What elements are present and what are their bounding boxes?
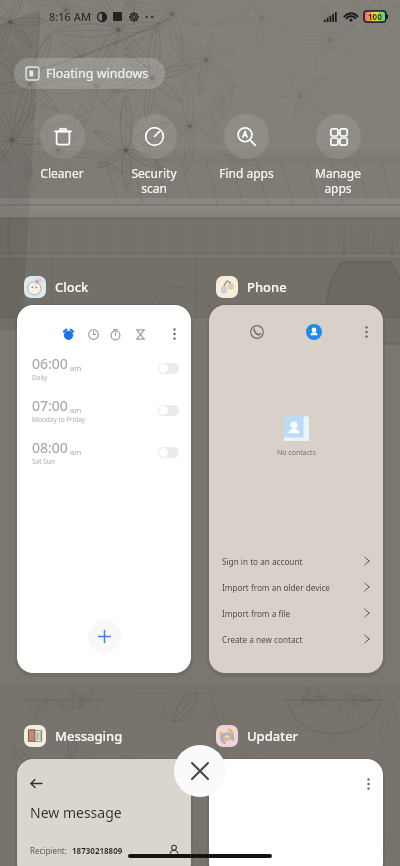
button[interactable]: More options bbox=[209, 759, 383, 866]
button[interactable]: Clock bbox=[24, 272, 89, 302]
staticText: Import from a file bbox=[222, 608, 291, 619]
button[interactable]: World clock bbox=[88, 329, 99, 340]
button[interactable]: Stopwatch bbox=[110, 329, 121, 340]
button[interactable]: Sign in to an account bbox=[222, 548, 370, 574]
staticText: 06:00 bbox=[32, 354, 68, 373]
button[interactable]: Add alarm bbox=[88, 620, 121, 653]
staticText: Sign in to an account bbox=[222, 556, 303, 567]
staticText: Cleaner bbox=[40, 165, 84, 181]
button[interactable]: Messaging bbox=[24, 721, 123, 751]
staticText: Clock bbox=[55, 278, 89, 296]
button[interactable]: Back bbox=[17, 759, 191, 866]
staticText: Daily bbox=[32, 373, 48, 382]
staticText: Messaging bbox=[55, 727, 123, 745]
button[interactable] bbox=[158, 405, 179, 416]
staticText: am bbox=[68, 447, 82, 457]
staticText: Phone bbox=[247, 278, 287, 296]
button[interactable]: Find apps bbox=[201, 114, 291, 181]
button[interactable]: Create a new contact bbox=[222, 626, 370, 652]
staticText: New message bbox=[30, 803, 122, 822]
button[interactable]: Updater bbox=[216, 721, 299, 751]
staticText: am bbox=[68, 405, 82, 415]
button[interactable]: Back bbox=[30, 777, 43, 790]
button[interactable]: Dialer bbox=[250, 325, 264, 339]
other: Battery 100 percent bbox=[364, 11, 388, 22]
button[interactable]: Close bbox=[174, 745, 226, 797]
button[interactable] bbox=[158, 447, 179, 458]
staticText: 08:00 bbox=[32, 438, 68, 457]
staticText: Updater bbox=[247, 727, 299, 745]
button[interactable]: 07:00 bbox=[32, 393, 179, 427]
button[interactable]: Alarm bbox=[17, 305, 191, 673]
staticText: Import from an older device bbox=[222, 582, 330, 593]
button[interactable]: More options bbox=[364, 777, 373, 791]
staticText: 07:00 bbox=[32, 396, 68, 415]
staticText: 18730218809 bbox=[72, 845, 123, 856]
button[interactable]: Cleaner bbox=[17, 114, 107, 181]
button[interactable]: Import from a file bbox=[222, 600, 370, 626]
staticText: Recipient: bbox=[30, 845, 67, 856]
button[interactable]: 06:00 bbox=[32, 351, 179, 385]
button[interactable]: Timer bbox=[135, 329, 146, 340]
staticText: am bbox=[68, 363, 82, 373]
button[interactable]: Alarm bbox=[63, 329, 74, 340]
staticText: Floating windows bbox=[46, 65, 149, 82]
staticText: Sat Sun bbox=[32, 457, 55, 466]
staticText: Find apps bbox=[219, 165, 274, 181]
button[interactable]: Contacts bbox=[306, 324, 322, 340]
other: Signal bbox=[324, 12, 338, 22]
staticText: Monday to Friday bbox=[32, 415, 86, 424]
other: Wi-Fi bbox=[344, 12, 358, 22]
button[interactable]: More options bbox=[362, 325, 371, 339]
button[interactable]: Floating windows bbox=[14, 58, 165, 89]
staticText: No contacts bbox=[277, 448, 316, 458]
staticText: 100 bbox=[368, 11, 382, 22]
button[interactable] bbox=[158, 363, 179, 374]
button[interactable]: More options bbox=[170, 327, 179, 341]
staticText: Create a new contact bbox=[222, 634, 303, 645]
staticText: Manage apps bbox=[315, 165, 361, 196]
button[interactable]: 08:00 bbox=[32, 435, 179, 469]
button[interactable]: Import from an older device bbox=[222, 574, 370, 600]
button[interactable]: Dialer bbox=[209, 305, 383, 673]
staticText: 8:16 AM bbox=[49, 9, 92, 24]
button[interactable]: Phone bbox=[216, 272, 287, 302]
staticText: Security scan bbox=[131, 165, 177, 196]
button[interactable]: Manage apps bbox=[293, 114, 383, 196]
button[interactable]: Security scan bbox=[109, 114, 199, 196]
